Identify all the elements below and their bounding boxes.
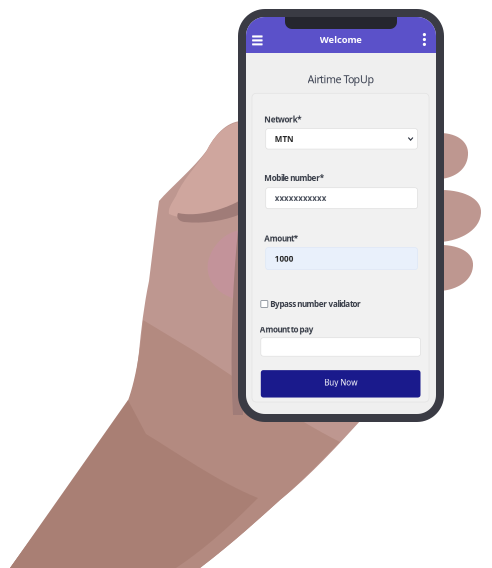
staticText: Network* (264, 114, 301, 125)
staticText: Airtime TopUp (307, 72, 374, 86)
staticText: Buy Now (324, 377, 357, 388)
staticText: Amount to pay (260, 324, 314, 335)
staticText: Bypass number validator (270, 299, 361, 309)
button[interactable]: More options (414, 28, 434, 48)
staticText: Mobile number* (264, 173, 324, 183)
button[interactable]: Bypass number validator (261, 299, 420, 309)
staticText: Amount* (264, 233, 298, 244)
button[interactable]: Network, MTN (266, 129, 417, 149)
button[interactable]: Mobile number (266, 188, 417, 209)
staticText: MTN (275, 133, 294, 144)
staticText: 1000 (275, 253, 294, 264)
button[interactable]: Buy Now (261, 370, 420, 397)
staticText: Welcome (320, 33, 362, 46)
staticText: xxxxxxxxxxx (275, 193, 327, 203)
button[interactable]: Menu (247, 30, 268, 50)
button[interactable]: Amount (266, 248, 417, 270)
